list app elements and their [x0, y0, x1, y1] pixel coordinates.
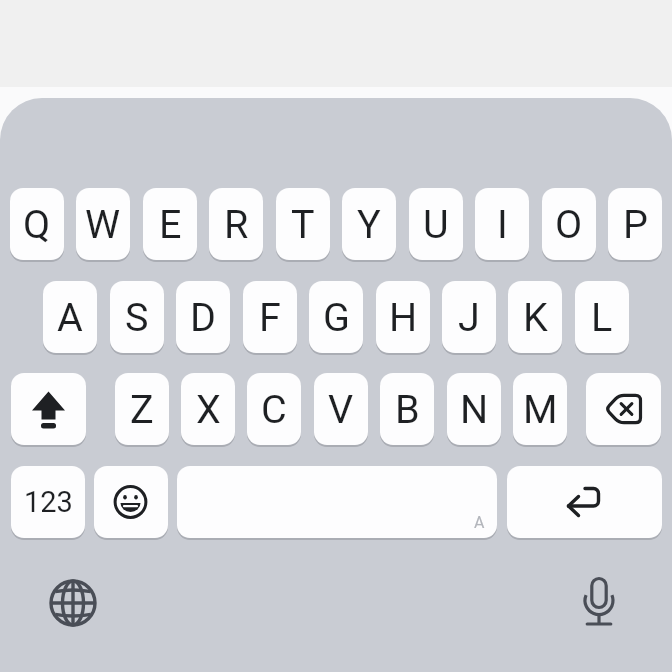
button[interactable]: Y	[342, 188, 396, 260]
staticText: J	[458, 294, 480, 340]
staticText: O	[555, 201, 583, 247]
button[interactable]: D	[176, 281, 230, 353]
button[interactable]	[11, 373, 86, 445]
staticText: E	[159, 201, 182, 247]
staticText: A	[474, 513, 485, 532]
staticText: G	[323, 294, 350, 340]
button[interactable]: H	[376, 281, 430, 353]
button[interactable]: I	[475, 188, 529, 260]
button[interactable]	[507, 466, 662, 538]
staticText: I	[497, 201, 508, 247]
button[interactable]	[569, 571, 629, 631]
staticText: N	[460, 386, 489, 432]
button[interactable]	[94, 466, 168, 538]
button[interactable]: T	[276, 188, 330, 260]
button[interactable]: W	[76, 188, 130, 260]
button[interactable]: Q	[10, 188, 64, 260]
button[interactable]: E	[143, 188, 197, 260]
staticText: Y	[357, 201, 381, 247]
staticText: W	[85, 201, 121, 247]
staticText: B	[395, 386, 420, 432]
button[interactable]: X	[181, 373, 235, 445]
button[interactable]: J	[442, 281, 496, 353]
button[interactable]: K	[508, 281, 562, 353]
staticText: V	[328, 386, 354, 432]
staticText: Z	[130, 386, 154, 432]
staticText: S	[125, 294, 149, 340]
staticText: A	[57, 294, 83, 340]
button[interactable]: M	[513, 373, 567, 445]
staticText: M	[523, 386, 558, 432]
button[interactable]: A	[177, 466, 497, 538]
button[interactable]: N	[447, 373, 501, 445]
button[interactable]: P	[608, 188, 662, 260]
button[interactable]: F	[243, 281, 297, 353]
staticText: C	[261, 386, 287, 432]
button[interactable]: Z	[115, 373, 169, 445]
staticText: R	[224, 201, 249, 247]
button[interactable]: 123	[11, 466, 85, 538]
button[interactable]	[43, 573, 103, 633]
button[interactable]: A	[43, 281, 97, 353]
staticText: D	[190, 294, 216, 340]
staticText: 123	[24, 485, 73, 519]
button[interactable]: G	[309, 281, 363, 353]
staticText: F	[259, 294, 281, 340]
button[interactable]: U	[409, 188, 463, 260]
staticText: X	[196, 386, 221, 432]
staticText: Q	[23, 201, 51, 247]
button[interactable]	[586, 373, 661, 445]
staticText: H	[389, 294, 418, 340]
staticText: L	[591, 294, 613, 340]
button[interactable]: S	[110, 281, 164, 353]
button[interactable]: V	[314, 373, 368, 445]
staticText: P	[623, 201, 648, 247]
button[interactable]: B	[380, 373, 434, 445]
button[interactable]: L	[575, 281, 629, 353]
staticText: U	[423, 201, 449, 247]
staticText: K	[523, 294, 548, 340]
button[interactable]: C	[247, 373, 301, 445]
staticText: T	[291, 201, 315, 247]
button[interactable]: R	[209, 188, 263, 260]
button[interactable]: O	[542, 188, 596, 260]
